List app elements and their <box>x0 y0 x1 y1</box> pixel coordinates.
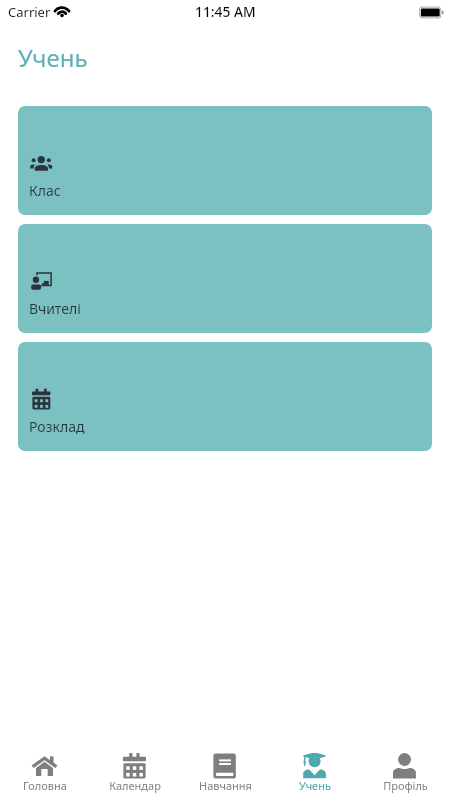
staticText: Навчання <box>199 778 252 793</box>
button[interactable]: Calendar <box>90 738 180 800</box>
staticText: 11:45 AM <box>195 2 256 21</box>
button[interactable]: Home <box>0 738 90 800</box>
staticText: Профіль <box>383 778 428 793</box>
staticText: Учень <box>299 778 331 793</box>
staticText: Учень <box>18 41 88 74</box>
staticText: Розклад <box>29 417 85 436</box>
button[interactable]: Вчителі <box>18 224 432 333</box>
staticText: Календар <box>109 778 161 793</box>
staticText: Клас <box>29 181 61 200</box>
button[interactable]: Розклад <box>18 342 432 451</box>
button[interactable]: Profile <box>360 738 450 800</box>
button[interactable]: Learning <box>180 738 270 800</box>
staticText: Carrier <box>8 3 51 21</box>
button[interactable]: Клас <box>18 106 432 215</box>
staticText: Головна <box>23 778 67 793</box>
staticText: Вчителі <box>29 299 81 318</box>
button[interactable]: Student <box>270 738 360 800</box>
